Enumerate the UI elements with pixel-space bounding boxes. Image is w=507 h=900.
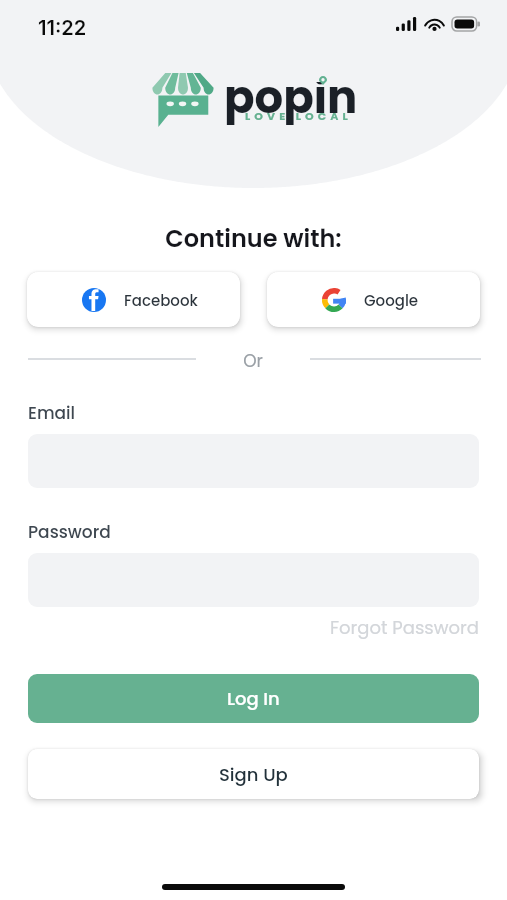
staticText: Password	[28, 520, 111, 544]
button[interactable]: Facebook	[27, 272, 240, 327]
staticText: popin	[224, 66, 358, 129]
button[interactable]: Sign Up	[28, 749, 479, 799]
staticText: 11:22	[38, 16, 87, 40]
button[interactable]: Forgot Password	[330, 615, 479, 640]
staticText: Log In	[227, 686, 280, 711]
staticText: Continue with:	[0, 222, 507, 256]
staticText: LOVE LOCAL	[245, 108, 352, 123]
staticText: Or	[196, 349, 310, 373]
button[interactable]: Log In	[28, 674, 479, 723]
staticText: Sign Up	[219, 762, 288, 787]
staticText: Google	[364, 290, 419, 311]
button[interactable]: Google	[267, 272, 480, 327]
staticText: Facebook	[124, 290, 198, 311]
staticText: Email	[28, 401, 76, 425]
